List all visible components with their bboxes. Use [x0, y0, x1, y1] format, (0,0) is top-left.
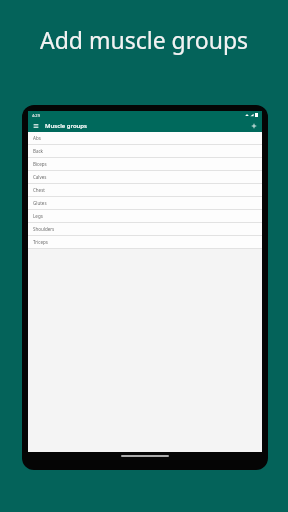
staticText: Back — [33, 148, 44, 154]
button[interactable]: Triceps — [28, 236, 262, 249]
button[interactable]: Legs — [28, 210, 262, 223]
staticText: Abs — [33, 135, 41, 141]
staticText: Muscle groups — [45, 122, 87, 130]
button[interactable]: Open navigation menu — [31, 121, 41, 131]
staticText: Triceps — [33, 239, 48, 245]
button[interactable]: Back — [28, 145, 262, 158]
button[interactable]: Shoulders — [28, 223, 262, 236]
button[interactable]: Calves — [28, 171, 262, 184]
staticText: 4:29 — [32, 113, 40, 118]
staticText: Add muscle groups — [0, 24, 288, 55]
staticText: Chest — [33, 187, 45, 193]
button[interactable]: Add muscle group — [249, 121, 259, 131]
button[interactable]: Glutes — [28, 197, 262, 210]
button[interactable]: Chest — [28, 184, 262, 197]
staticText: Shoulders — [33, 226, 55, 232]
button[interactable]: Abs — [28, 132, 262, 145]
staticText: Calves — [33, 174, 47, 180]
staticText: Biceps — [33, 161, 47, 167]
button[interactable]: Biceps — [28, 158, 262, 171]
staticText: Glutes — [33, 200, 47, 206]
staticText: Legs — [33, 213, 43, 219]
